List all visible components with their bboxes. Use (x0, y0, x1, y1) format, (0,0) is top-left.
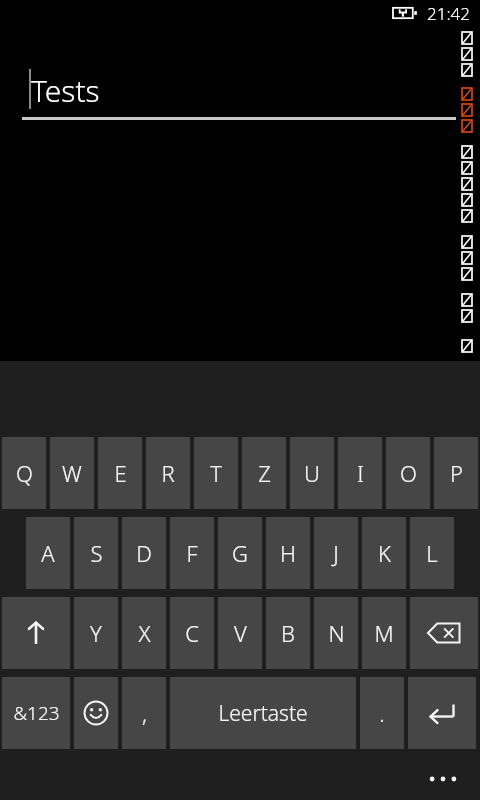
staticText: M (374, 618, 394, 648)
button[interactable]: G (218, 517, 262, 589)
staticText: R (161, 458, 175, 488)
staticText: L (426, 538, 438, 568)
button[interactable]: O (386, 437, 430, 509)
button[interactable]: E (98, 437, 142, 509)
button[interactable]: P (434, 437, 478, 509)
button[interactable]: Z (242, 437, 286, 509)
button[interactable]: N (314, 597, 358, 669)
staticText: K (378, 538, 391, 568)
button[interactable]: &123 (2, 677, 70, 749)
staticText: H (280, 538, 296, 568)
button[interactable]: D (122, 517, 166, 589)
button[interactable]: F (170, 517, 214, 589)
button[interactable]: W (50, 437, 94, 509)
staticText: Z (258, 458, 271, 488)
staticText: B (281, 618, 295, 648)
button[interactable]: X (122, 597, 166, 669)
staticText: . (379, 698, 385, 728)
staticText: N (328, 618, 345, 648)
button[interactable]: Shift (2, 597, 70, 669)
staticText: E (114, 458, 127, 488)
staticText: J (333, 538, 339, 568)
button[interactable]: I (338, 437, 382, 509)
button[interactable]: Y (74, 597, 118, 669)
staticText: Leertaste (218, 699, 308, 728)
staticText: Y (90, 618, 102, 648)
staticText: F (186, 538, 198, 568)
button[interactable]: U (290, 437, 334, 509)
button[interactable]: T (194, 437, 238, 509)
staticText: T (210, 458, 222, 488)
staticText: C (185, 618, 199, 648)
button[interactable]: Leertaste (170, 677, 356, 749)
button[interactable]: H (266, 517, 310, 589)
staticText: W (62, 458, 82, 488)
staticText: S (90, 538, 103, 568)
staticText: I (357, 458, 364, 488)
button[interactable]: Enter (408, 677, 476, 749)
staticText: V (234, 618, 247, 648)
staticText: U (304, 458, 320, 488)
staticText: D (136, 538, 152, 568)
button[interactable]: B (266, 597, 310, 669)
button[interactable]: Tests (0, 66, 480, 122)
button[interactable]: . (360, 677, 404, 749)
button[interactable]: , (122, 677, 166, 749)
button[interactable]: R (146, 437, 190, 509)
staticText: G (232, 538, 248, 568)
staticText: P (450, 458, 463, 488)
button[interactable]: V (218, 597, 262, 669)
staticText: O (400, 458, 417, 488)
button[interactable]: L (410, 517, 454, 589)
staticText: A (41, 538, 55, 568)
button[interactable]: J (314, 517, 358, 589)
button[interactable]: C (170, 597, 214, 669)
staticText: X (138, 618, 151, 648)
button[interactable]: More (420, 766, 466, 792)
staticText: , (142, 698, 147, 728)
button[interactable]: M (362, 597, 406, 669)
staticText: Q (16, 458, 33, 488)
staticText: Tests (31, 70, 100, 111)
button[interactable]: K (362, 517, 406, 589)
button[interactable]: Backspace (410, 597, 478, 669)
staticText: 21:42 (427, 2, 470, 25)
button[interactable]: A (26, 517, 70, 589)
button[interactable]: S (74, 517, 118, 589)
other: Battery charging (393, 6, 419, 20)
staticText: &123 (13, 700, 60, 726)
button[interactable]: Q (2, 437, 46, 509)
button[interactable]: Emoji (74, 677, 118, 749)
